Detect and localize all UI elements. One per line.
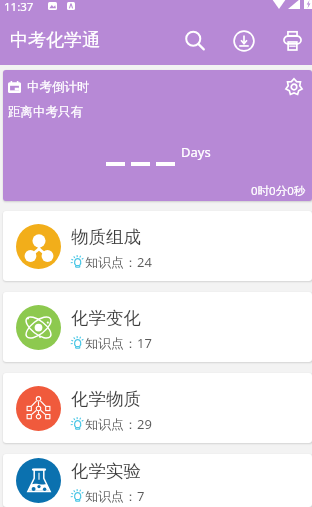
staticText: 知识点：7: [85, 487, 145, 505]
staticText: 化学实验: [71, 460, 141, 482]
staticText: Days: [181, 143, 211, 161]
button[interactable]: Download: [224, 16, 264, 65]
staticText: 知识点：24: [85, 253, 152, 271]
button[interactable]: 化学变化: [3, 292, 312, 362]
button[interactable]: 化学物质: [3, 373, 312, 443]
button[interactable]: 化学实验: [3, 454, 312, 507]
staticText: 知识点：29: [85, 415, 152, 433]
staticText: 0时0分0秒: [251, 183, 306, 199]
staticText: 中考倒计时: [27, 79, 90, 95]
button[interactable]: Print: [273, 16, 312, 65]
staticText: 中考化学通: [10, 29, 100, 52]
button[interactable]: Settings: [284, 77, 304, 97]
staticText: 知识点：17: [85, 334, 152, 352]
staticText: 化学变化: [71, 307, 141, 329]
button[interactable]: 中考倒计时: [3, 70, 312, 201]
button[interactable]: Search: [175, 16, 215, 65]
button[interactable]: 物质组成: [3, 211, 312, 281]
staticText: 距离中考只有: [8, 104, 83, 120]
staticText: 11:37: [4, 0, 34, 15]
staticText: 物质组成: [71, 226, 141, 248]
staticText: 化学物质: [71, 388, 141, 410]
